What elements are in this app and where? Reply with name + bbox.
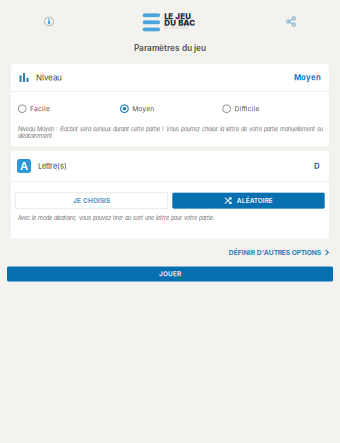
button[interactable]: Difficile [223,92,325,126]
button[interactable]: Moyen [121,92,223,126]
button[interactable]: DÉFINIR D'AUTRES OPTIONS [229,238,340,266]
staticText: Difficile [234,105,259,113]
staticText: Facile [30,105,50,113]
button[interactable]: JOUER [7,266,333,281]
staticText: DÉFINIR D'AUTRES OPTIONS [229,248,321,256]
staticText: JE CHOISIS [73,197,110,204]
button[interactable]: Facile [18,92,121,126]
staticText: ALÉATOIRE [237,197,273,204]
staticText: Lettre(s) [38,161,67,170]
staticText: Avec le mode aléatoire, vous pouvez tire… [18,215,215,221]
staticText: Moyen [294,73,321,82]
button[interactable]: Informations [36,8,62,34]
staticText: LE JEU [164,12,191,21]
staticText: D [314,161,320,171]
staticText: A [20,159,28,172]
staticText: Niveau [36,73,62,82]
button[interactable]: ALÉATOIRE [172,193,325,209]
button[interactable]: JE CHOISIS [15,193,168,209]
staticText: Paramètres du jeu [134,43,206,53]
staticText: JOUER [159,270,181,278]
staticText: LE JEU DU BAC [164,26,187,30]
staticText: DU BAC [164,18,195,28]
button[interactable]: Partager [278,8,304,34]
staticText: Moyen [132,105,154,113]
staticText: Niveau Moyen : Bacbot sera sérieux duran… [18,126,323,139]
